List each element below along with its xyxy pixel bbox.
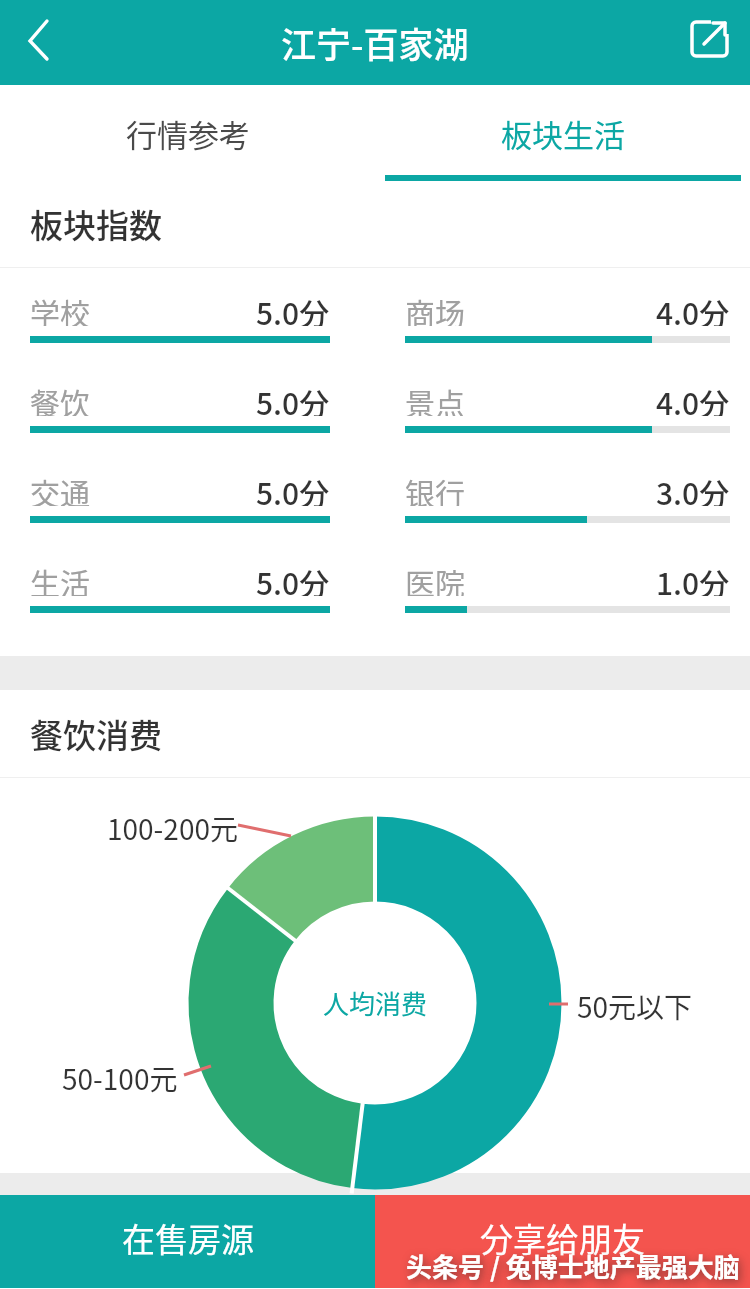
staticText: 板块指数 xyxy=(30,200,162,248)
staticText: 学校 xyxy=(30,290,90,326)
staticText: 4.0分 xyxy=(656,290,730,326)
staticText: 银行 xyxy=(405,470,465,506)
staticText: 板块生活 xyxy=(501,111,625,156)
button[interactable] xyxy=(0,0,60,85)
button[interactable]: 分享给朋友 xyxy=(375,1195,750,1288)
staticText: 餐饮 xyxy=(30,380,90,416)
staticText: 5.0分 xyxy=(256,380,330,416)
staticText: 生活 xyxy=(30,560,90,596)
staticText: 1.0分 xyxy=(656,560,730,596)
staticText: 江宁-百家湖 xyxy=(281,17,469,68)
staticText: 行情参考 xyxy=(126,111,250,156)
staticText: 头条号 / 兔博士地产最强大脑 xyxy=(406,1247,740,1285)
staticText: 50-100元 xyxy=(62,1058,178,1099)
button[interactable]: 景点 xyxy=(405,380,730,433)
button[interactable]: 行情参考 xyxy=(0,85,375,181)
staticText: 人均消费 xyxy=(323,984,428,1022)
staticText: 交通 xyxy=(30,470,90,506)
button[interactable]: 生活 xyxy=(30,560,330,613)
staticText: 5.0分 xyxy=(256,470,330,506)
button[interactable]: 交通 xyxy=(30,470,330,523)
staticText: 4.0分 xyxy=(656,380,730,416)
staticText: 5.0分 xyxy=(256,290,330,326)
staticText: 景点 xyxy=(405,380,465,416)
button[interactable]: 商场 xyxy=(405,290,730,343)
staticText: 100-200元 xyxy=(107,808,238,849)
staticText: 餐饮消费 xyxy=(30,710,162,758)
button[interactable] xyxy=(675,0,750,85)
staticText: 50元以下 xyxy=(577,986,693,1027)
button[interactable]: 板块生活 xyxy=(375,85,750,181)
staticText: 5.0分 xyxy=(256,560,330,596)
staticText: 分享给朋友 xyxy=(480,1214,645,1262)
button[interactable]: 医院 xyxy=(405,560,730,613)
staticText: 商场 xyxy=(405,290,465,326)
button[interactable]: 银行 xyxy=(405,470,730,523)
staticText: 3.0分 xyxy=(656,470,730,506)
button[interactable]: 学校 xyxy=(30,290,330,343)
button[interactable]: 在售房源 xyxy=(0,1195,375,1288)
staticText: 在售房源 xyxy=(122,1214,254,1262)
staticText: 医院 xyxy=(405,560,465,596)
button[interactable]: 餐饮 xyxy=(30,380,330,433)
